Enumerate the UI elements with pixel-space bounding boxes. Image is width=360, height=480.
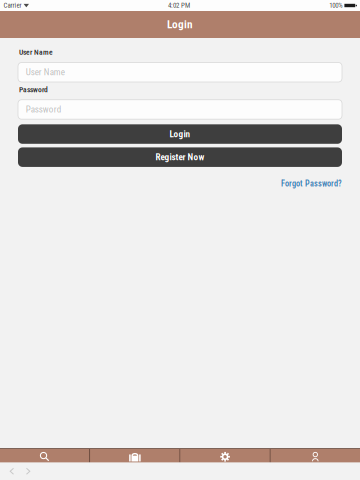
staticText: Password — [19, 85, 48, 94]
button[interactable]: Next field — [20, 464, 36, 479]
staticText: 100% — [329, 1, 342, 9]
button[interactable]: Login — [18, 124, 342, 144]
button[interactable]: Jobs — [90, 449, 180, 462]
staticText: Login — [167, 18, 193, 31]
button[interactable]: Previous field — [4, 464, 20, 479]
staticText: User Name — [19, 48, 53, 57]
button[interactable]: Forgot Password? — [281, 179, 342, 189]
staticText: Carrier — [4, 1, 22, 9]
staticText: 4:02 PM — [168, 1, 190, 9]
staticText: Password — [26, 104, 61, 115]
staticText: Login — [169, 129, 190, 139]
staticText: Register Now — [155, 152, 204, 163]
button[interactable]: Search — [0, 449, 89, 462]
staticText: User Name — [26, 67, 65, 77]
staticText: Forgot Password? — [281, 179, 342, 189]
button[interactable]: Settings — [180, 449, 270, 462]
button[interactable]: Profile — [271, 449, 360, 462]
button[interactable]: Register Now — [18, 147, 342, 167]
